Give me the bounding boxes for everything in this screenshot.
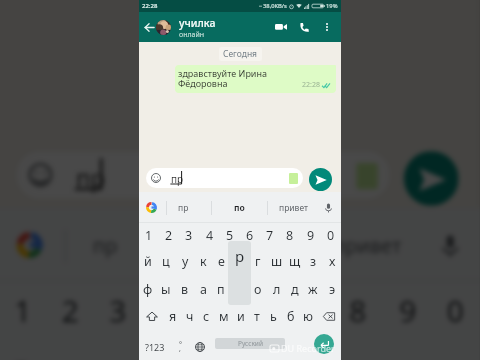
button[interactable]: м: [215, 303, 232, 330]
button[interactable]: пр: [17, 151, 390, 199]
button[interactable]: Shift: [139, 303, 164, 330]
button[interactable]: г: [249, 248, 267, 275]
button[interactable]: э: [323, 276, 341, 303]
button[interactable]: б: [282, 303, 299, 330]
button[interactable]: Русский: [215, 338, 285, 349]
button[interactable]: ф: [139, 276, 157, 303]
button[interactable]: 6: [240, 279, 287, 344]
button[interactable]: ю: [299, 303, 316, 330]
button[interactable]: о: [249, 276, 267, 303]
button[interactable]: у: [176, 248, 194, 275]
button[interactable]: 2: [47, 279, 95, 344]
button[interactable]: 0: [432, 279, 480, 344]
button[interactable]: Video call: [272, 18, 290, 36]
button[interactable]: More options: [319, 19, 335, 35]
button[interactable]: к: [194, 248, 212, 275]
button[interactable]: н: [219, 341, 261, 360]
button[interactable]: л: [268, 276, 286, 303]
button[interactable]: 9: [385, 279, 432, 344]
button[interactable]: Сегодня: [219, 47, 262, 61]
staticText: ш: [271, 253, 283, 270]
button[interactable]: привет: [267, 192, 320, 223]
button[interactable]: н: [231, 248, 249, 275]
button[interactable]: 5: [220, 222, 240, 249]
button[interactable]: Send: [309, 168, 332, 191]
button[interactable]: я: [164, 303, 181, 330]
button[interactable]: Voice input: [432, 208, 468, 282]
button[interactable]: ?123: [139, 333, 171, 360]
staticText: здравствуйте Ирина Фёдоровна: [178, 67, 267, 89]
button[interactable]: 8: [280, 222, 300, 249]
button[interactable]: 2: [159, 222, 179, 249]
button[interactable]: г: [261, 341, 304, 360]
button[interactable]: пр: [146, 168, 303, 188]
button[interactable]: 1: [139, 222, 159, 249]
button[interactable]: по: [211, 192, 267, 223]
button[interactable]: ч: [181, 303, 198, 330]
button[interactable]: 5: [192, 279, 240, 344]
button[interactable]: щ: [286, 248, 304, 275]
button[interactable]: ц: [157, 248, 175, 275]
button[interactable]: 3: [95, 279, 142, 344]
staticText: л: [273, 281, 281, 298]
button[interactable]: Symbols: [171, 333, 189, 360]
staticText: 8: [286, 227, 294, 244]
button[interactable]: ь: [265, 303, 282, 330]
button[interactable]: Send: [404, 151, 458, 206]
button[interactable]: 1: [0, 279, 47, 344]
button[interactable]: в: [176, 276, 194, 303]
button[interactable]: 6: [240, 222, 260, 249]
button[interactable]: здравствуйте Ирина Фёдоровна: [175, 65, 336, 93]
button[interactable]: а: [194, 276, 212, 303]
button[interactable]: Change keyboard language: [189, 333, 210, 360]
button[interactable]: Enter: [314, 334, 334, 354]
button[interactable]: Profile photo: [156, 20, 171, 35]
staticText: г: [255, 253, 261, 270]
button[interactable]: Back: [142, 12, 157, 42]
button[interactable]: 8: [335, 279, 382, 344]
button[interactable]: 7: [287, 279, 335, 344]
staticText: училка: [179, 16, 216, 30]
button[interactable]: 0: [321, 222, 341, 249]
button[interactable]: й: [139, 248, 157, 275]
button[interactable]: пр: [64, 208, 145, 282]
staticText: е: [218, 253, 225, 270]
button[interactable]: п: [212, 276, 230, 303]
button[interactable]: ы: [157, 276, 175, 303]
button[interactable]: Google search: [0, 208, 59, 282]
button[interactable]: ш: [268, 248, 286, 275]
button[interactable]: и: [232, 303, 249, 330]
button[interactable]: 4: [145, 279, 192, 344]
button[interactable]: Google search: [139, 192, 164, 223]
button[interactable]: е: [173, 341, 216, 360]
staticText: з: [310, 253, 317, 270]
button[interactable]: д: [286, 276, 304, 303]
button[interactable]: 3: [179, 222, 199, 249]
button[interactable]: ж: [304, 276, 322, 303]
button[interactable]: е: [212, 248, 230, 275]
button[interactable]: Voice input: [321, 192, 336, 223]
button[interactable]: 4: [200, 222, 220, 249]
button[interactable]: ш: [306, 341, 349, 360]
button[interactable]: 9: [301, 222, 321, 249]
staticText: ф: [143, 281, 153, 298]
button[interactable]: 7: [260, 222, 280, 249]
button[interactable]: пр: [166, 192, 200, 223]
button[interactable]: по: [171, 208, 304, 282]
button[interactable]: з: [304, 248, 322, 275]
button[interactable]: привет: [304, 208, 430, 282]
button[interactable]: к: [131, 341, 173, 360]
button[interactable]: Voice call: [295, 18, 313, 36]
button[interactable]: х: [323, 248, 341, 275]
button[interactable]: т: [248, 303, 265, 330]
button[interactable]: Backspace: [316, 303, 341, 330]
button[interactable]: с: [198, 303, 215, 330]
